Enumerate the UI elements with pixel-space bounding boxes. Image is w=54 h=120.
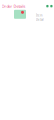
button[interactable]: Share xyxy=(46,5,48,7)
staticText: Detail xyxy=(36,18,44,21)
staticText: Item xyxy=(36,14,42,17)
button[interactable]: More xyxy=(50,5,52,7)
staticText: Order Details xyxy=(1,3,25,9)
